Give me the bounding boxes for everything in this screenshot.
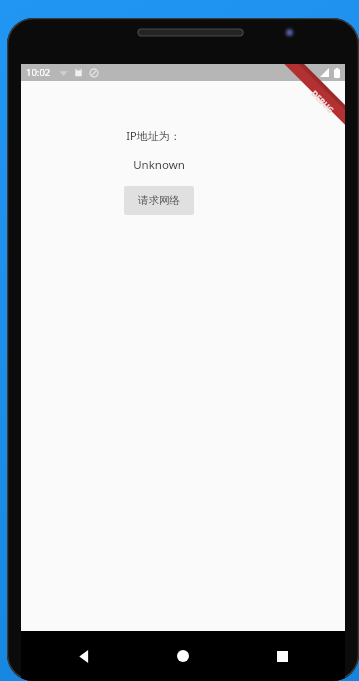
- staticText: Unknown: [133, 157, 185, 173]
- button[interactable]: Home: [161, 634, 205, 678]
- button[interactable]: Recent apps: [260, 634, 304, 678]
- staticText: IP地址为：: [126, 128, 181, 143]
- button[interactable]: 请求网络: [124, 186, 194, 215]
- staticText: 10:02: [26, 66, 51, 79]
- staticText: DEBUG: [309, 88, 337, 115]
- button[interactable]: Back: [62, 634, 106, 678]
- staticText: 请求网络: [138, 194, 180, 207]
